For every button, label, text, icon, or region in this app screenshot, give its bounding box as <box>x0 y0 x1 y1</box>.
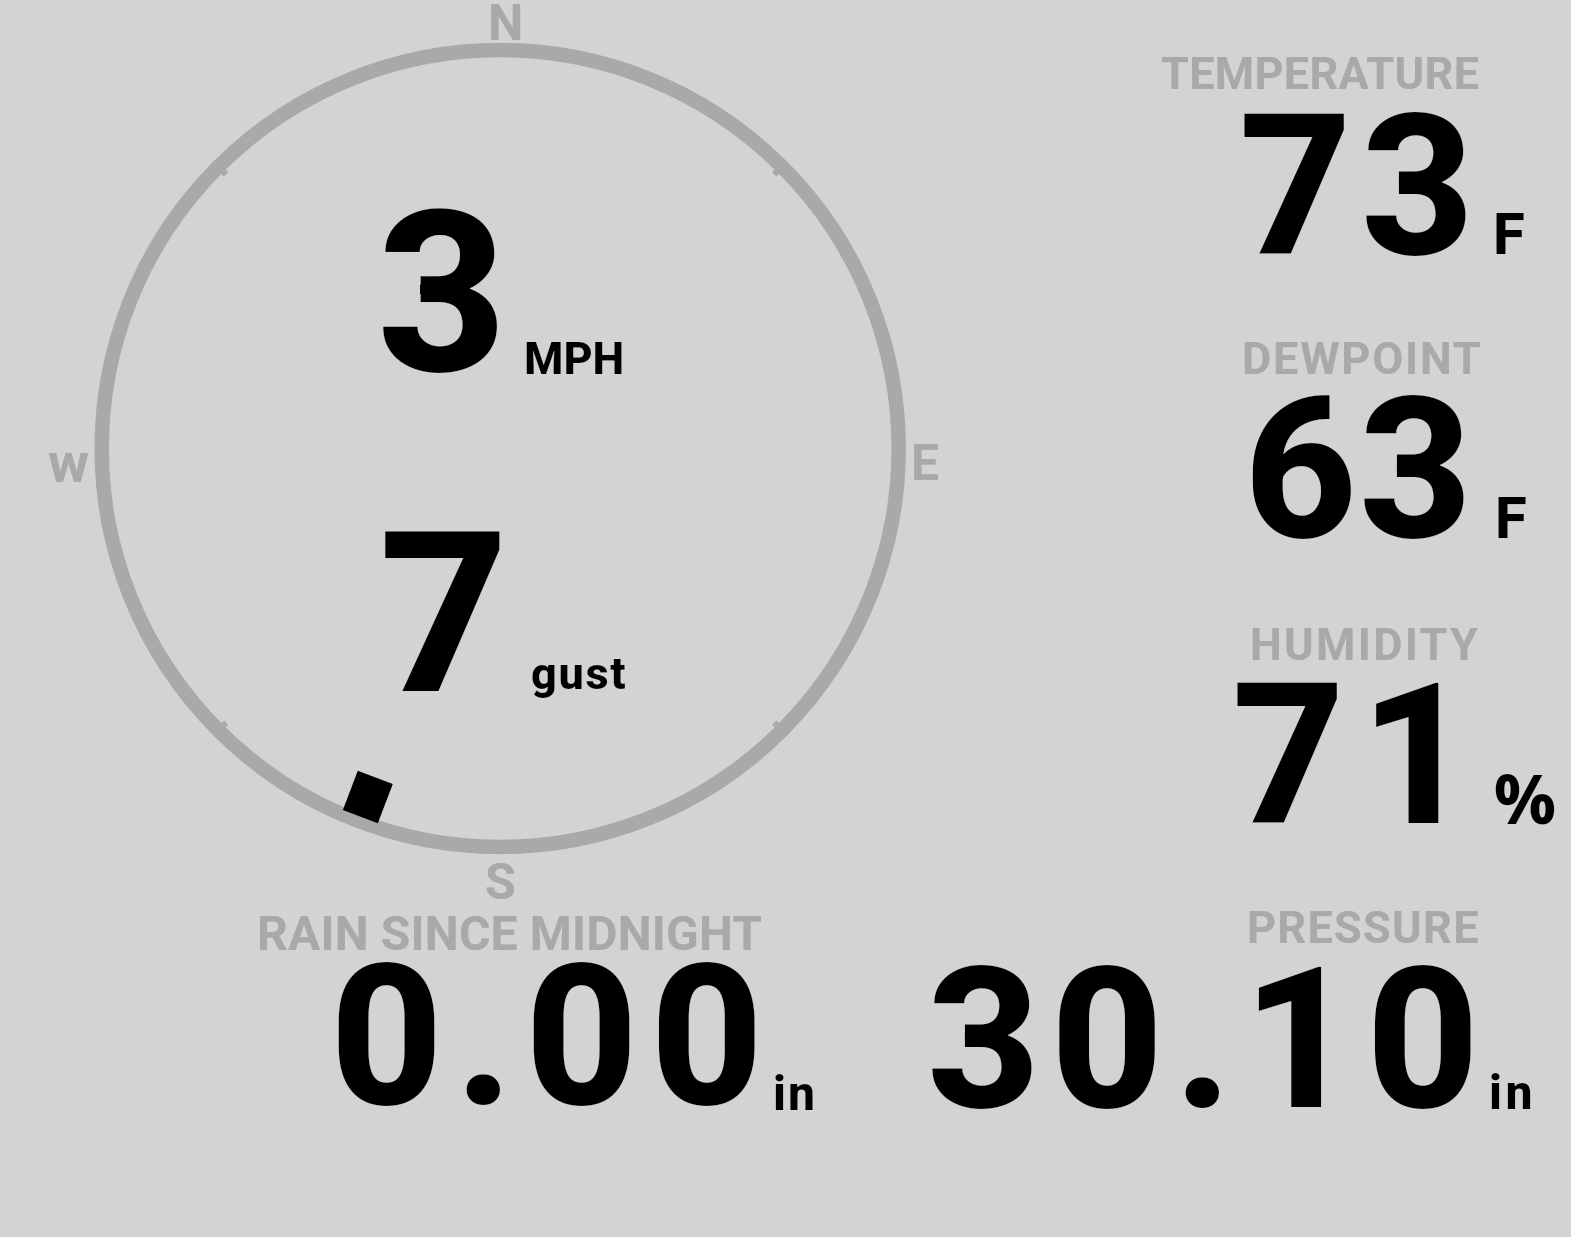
staticText: % <box>1494 752 1556 843</box>
staticText: gust <box>531 647 628 700</box>
staticText: 30.10 <box>927 925 1490 1155</box>
staticText: 63 <box>1244 355 1475 585</box>
button[interactable]: Rain since midnight 0.00 inches <box>230 890 850 1130</box>
staticText: N <box>488 0 524 53</box>
staticText: 71 <box>1232 641 1489 871</box>
staticText: MPH <box>524 332 625 385</box>
staticText: 7 <box>379 482 509 746</box>
button[interactable]: Wind speed and direction <box>40 0 960 900</box>
button[interactable]: Temperature 73 degrees F <box>1100 30 1571 295</box>
staticText: F <box>1493 200 1525 268</box>
staticText: 73 <box>1239 72 1484 302</box>
staticText: 3 <box>377 162 507 426</box>
button[interactable]: Humidity 71 percent <box>1100 600 1571 865</box>
button[interactable]: Dewpoint 63 degrees F <box>1100 315 1571 580</box>
staticText: HUMIDITY <box>1250 618 1481 671</box>
staticText: RAIN SINCE MIDNIGHT <box>257 905 763 961</box>
staticText: E <box>911 434 940 493</box>
staticText: F <box>1495 484 1527 552</box>
staticText: DEWPOINT <box>1242 332 1483 385</box>
staticText: 0.00 <box>330 922 776 1152</box>
staticText: in <box>773 1065 817 1121</box>
staticText: w <box>48 430 90 496</box>
staticText: PRESSURE <box>1247 901 1480 954</box>
staticText: in <box>1489 1064 1536 1120</box>
staticText: S <box>485 853 516 912</box>
staticText: TEMPERATURE <box>1161 47 1480 100</box>
button[interactable]: Pressure 30.10 inches <box>900 890 1550 1130</box>
